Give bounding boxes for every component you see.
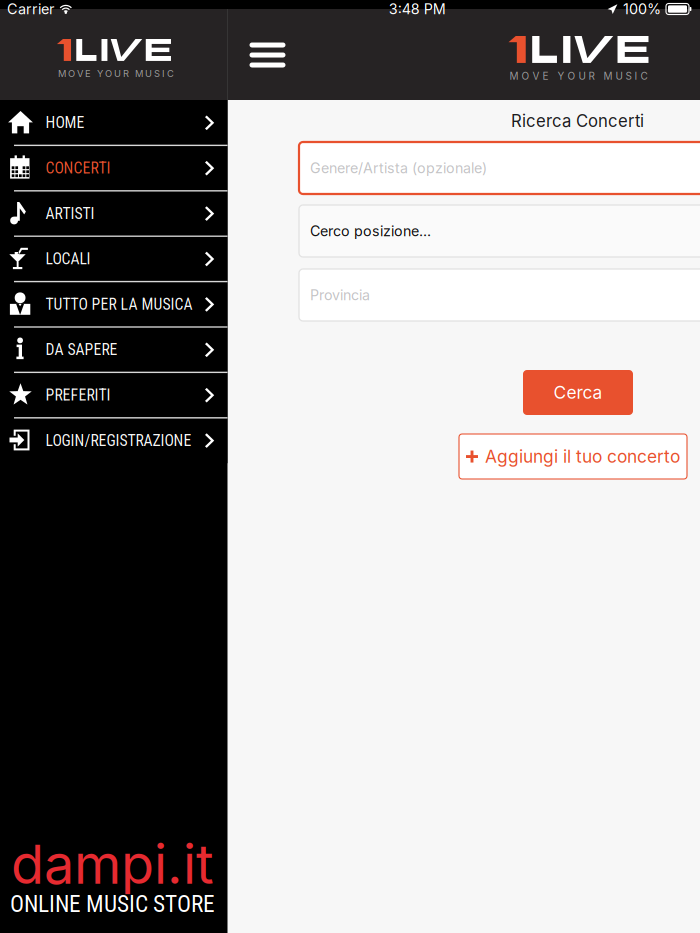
staticText: ONLINE MUSIC STORE [10, 890, 215, 918]
staticText: Ricerca Concerti [511, 111, 644, 131]
button[interactable]: PREFERITI [0, 372, 227, 418]
staticText: ARTISTI [45, 204, 94, 223]
staticText: Carrier [7, 0, 54, 18]
staticText: dampi.it [11, 831, 214, 897]
staticText: CONCERTI [45, 159, 110, 177]
staticText: Genere/Artista (opzionale) [310, 159, 487, 177]
staticText: HOME [45, 113, 84, 132]
staticText: LOCALI [45, 250, 90, 268]
button[interactable]: CONCERTI [0, 145, 227, 191]
button[interactable]: TUTTO PER LA MUSICA [0, 282, 227, 327]
staticText: Cerca [553, 382, 602, 403]
button[interactable]: Cerco posizione... [299, 205, 700, 257]
button[interactable]: Genere/Artista (opzionale) [299, 142, 700, 194]
staticText: 3:48 PM [389, 0, 446, 18]
button[interactable]: LOCALI [0, 236, 227, 282]
staticText: 100% [623, 0, 661, 18]
button[interactable]: Provincia [299, 269, 700, 321]
button[interactable]: Aggiungi il tuo concerto [459, 434, 687, 479]
button[interactable]: Menu [238, 26, 296, 84]
staticText: Aggiungi il tuo concerto [485, 446, 680, 467]
staticText: DA SAPERE [45, 340, 117, 359]
button[interactable]: Cerca [523, 370, 633, 415]
button[interactable]: LOGIN/REGISTRAZIONE [0, 418, 227, 463]
staticText: Cerco posizione... [310, 222, 431, 240]
button[interactable]: HOME [0, 100, 227, 145]
button[interactable]: ARTISTI [0, 191, 227, 236]
staticText: M O V E Y O U R M U S I C [509, 70, 647, 82]
staticText: Provincia [310, 286, 370, 304]
staticText: M O V E Y O U R M U S I C [58, 68, 174, 79]
staticText: TUTTO PER LA MUSICA [45, 295, 192, 313]
staticText: PREFERITI [45, 386, 110, 404]
staticText: LOGIN/REGISTRAZIONE [45, 431, 191, 450]
button[interactable]: DA SAPERE [0, 327, 227, 372]
